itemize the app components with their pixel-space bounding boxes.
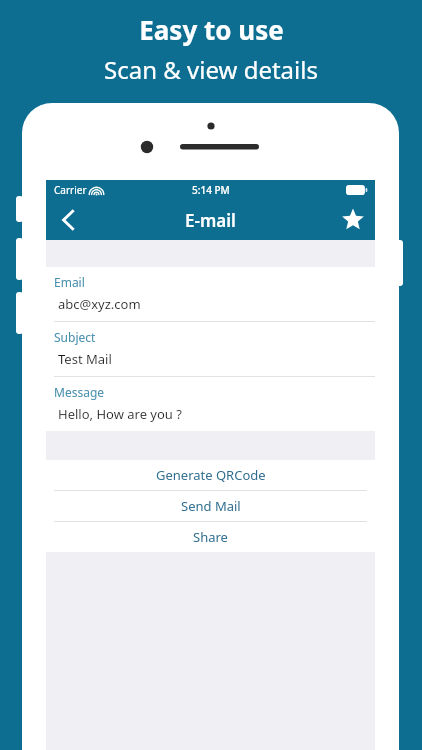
staticText: Scan & view details (104, 53, 318, 86)
button[interactable]: Message (46, 377, 375, 431)
button[interactable]: Share (46, 522, 375, 552)
staticText: Share (193, 528, 228, 546)
staticText: Subject (54, 329, 96, 345)
button[interactable]: Generate QRCode (46, 460, 375, 491)
staticText: 5:14 PM (192, 183, 230, 197)
button[interactable]: Back (46, 200, 90, 240)
button[interactable]: Email (46, 267, 375, 322)
staticText: Test Mail (58, 350, 112, 368)
staticText: Email (54, 274, 85, 290)
button[interactable]: Send Mail (46, 491, 375, 522)
staticText: Hello, How are you ? (58, 405, 182, 423)
staticText: E-mail (185, 209, 236, 232)
staticText: Carrier (54, 183, 87, 197)
staticText: Send Mail (181, 497, 241, 515)
staticText: Easy to use (139, 12, 284, 47)
button[interactable]: Subject (46, 322, 375, 377)
button[interactable]: Favorite (331, 200, 375, 240)
staticText: Generate QRCode (156, 466, 266, 484)
staticText: abc@xyz.com (58, 295, 141, 313)
staticText: Message (54, 384, 105, 400)
